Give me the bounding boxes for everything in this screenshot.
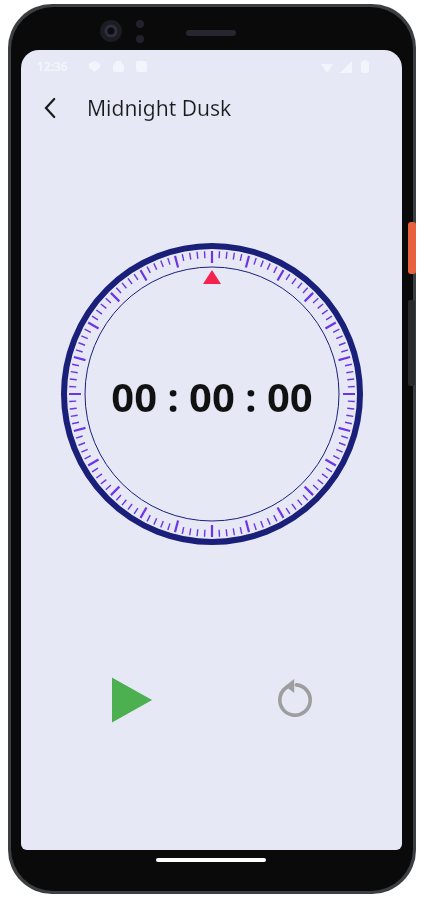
staticText: Midnight Dusk xyxy=(87,94,232,123)
button[interactable]: Start xyxy=(99,668,163,732)
staticText: 00 : 00 : 00 xyxy=(111,369,313,423)
staticText: 12:36 xyxy=(37,58,68,74)
button[interactable]: Reset xyxy=(263,668,327,732)
button[interactable]: Back xyxy=(29,86,73,130)
